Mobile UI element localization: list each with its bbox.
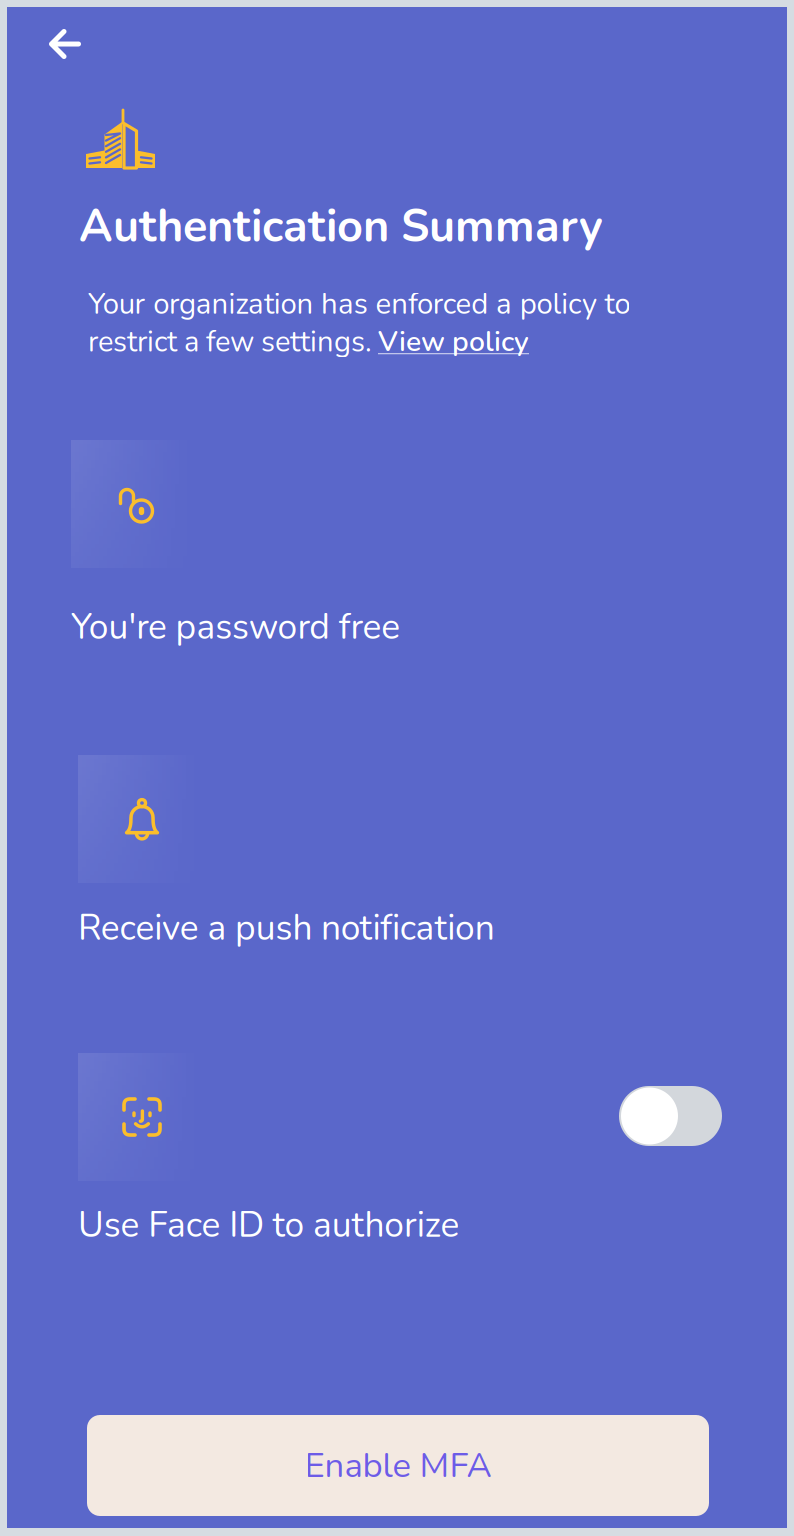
staticText: Receive a push notification xyxy=(78,904,495,952)
staticText: You're password free xyxy=(71,603,400,651)
staticText: View policy xyxy=(378,322,529,361)
staticText: restrict a few settings. xyxy=(88,322,378,362)
staticText: Your organization has enforced a policy … xyxy=(88,284,630,324)
button[interactable]: Enable MFA xyxy=(87,1415,709,1516)
staticText: Authentication Summary xyxy=(79,196,603,257)
button[interactable]: Use Face ID to authorize xyxy=(619,1086,722,1146)
staticText: Enable MFA xyxy=(304,1442,491,1489)
staticText: Use Face ID to authorize xyxy=(78,1201,459,1249)
button[interactable]: View policy xyxy=(378,322,529,361)
button[interactable]: Back xyxy=(35,16,95,72)
